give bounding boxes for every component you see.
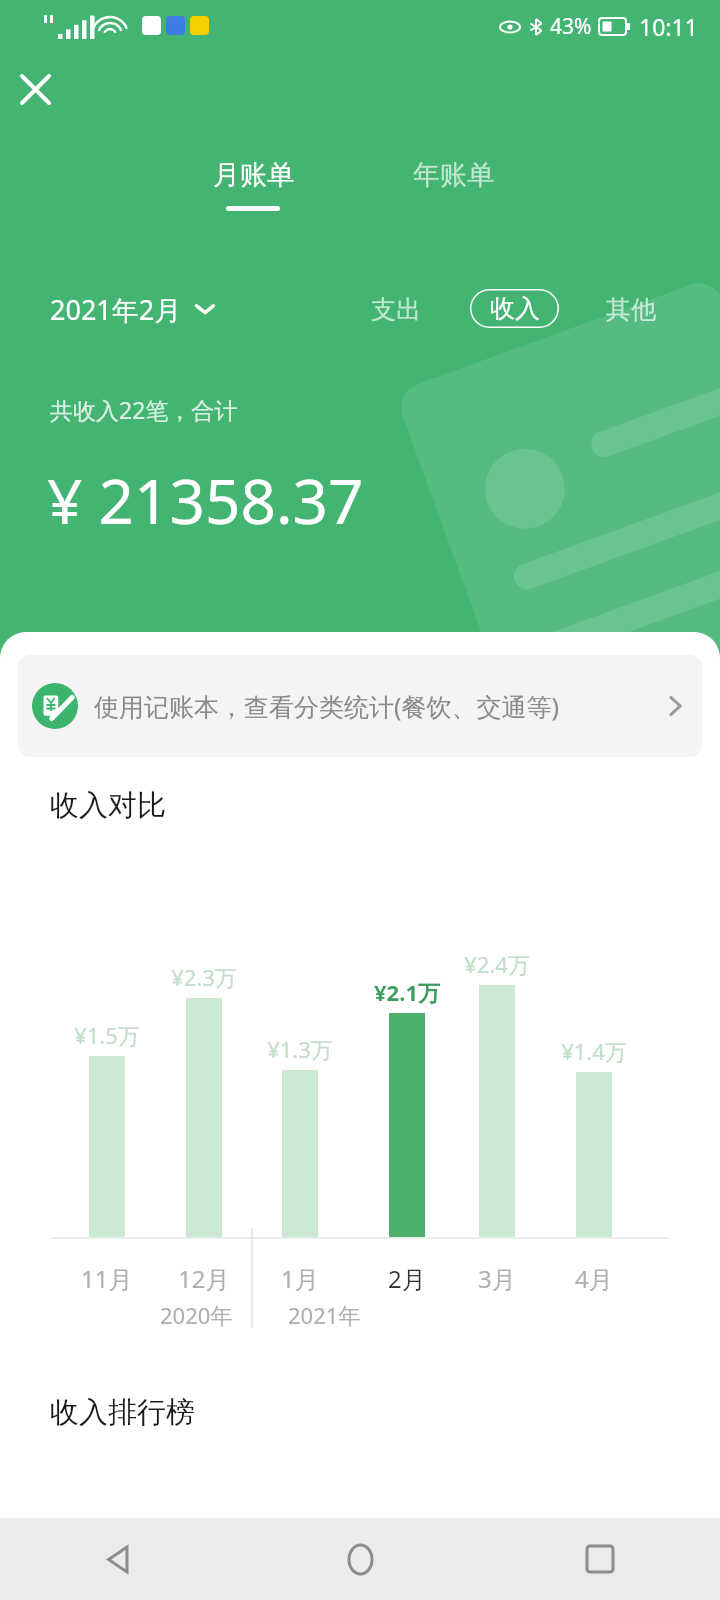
staticText: 11月 (81, 1262, 133, 1295)
staticText: ¥2.3万 (152, 962, 256, 992)
button[interactable]: Close (6, 60, 64, 118)
staticText: 4月 (575, 1262, 613, 1295)
staticText: ¥1.5万 (55, 1020, 159, 1050)
staticText: 收入 (490, 293, 540, 324)
staticText: 12月 (178, 1262, 230, 1295)
staticText: 收入排行榜 (50, 1394, 195, 1431)
button[interactable]: 2月 (363, 1256, 451, 1300)
staticText: 2021年2月 (50, 291, 182, 328)
staticText: 收入对比 (50, 787, 166, 824)
button[interactable]: 使用记账本，查看分类统计(餐饮、交通等) (18, 655, 702, 757)
staticText: 使用记账本，查看分类统计(餐饮、交通等) (94, 689, 650, 723)
staticText: 年账单 (413, 158, 494, 192)
staticText: 10:11 (639, 11, 698, 42)
button[interactable]: 1月 (256, 1256, 344, 1300)
button[interactable]: 11月 (63, 1256, 151, 1300)
button[interactable]: 支出 (362, 287, 430, 331)
button[interactable]: Recents (480, 1518, 720, 1600)
staticText: 支出 (371, 294, 421, 325)
button[interactable]: 月账单 (193, 158, 313, 211)
staticText: ¥1.4万 (542, 1036, 646, 1066)
button[interactable]: 3月 (453, 1256, 541, 1300)
staticText: 2月 (388, 1262, 426, 1295)
button[interactable]: 收入 (470, 289, 559, 328)
staticText: ¥ 21358.37 (47, 458, 364, 542)
staticText: 43% (550, 12, 592, 41)
staticText: 2021年 (288, 1300, 376, 1330)
button[interactable]: 年账单 (393, 158, 513, 204)
staticText: 月账单 (213, 158, 294, 192)
button[interactable]: Home (240, 1518, 480, 1600)
staticText: 共收入22笔，合计 (50, 394, 238, 425)
staticText: ¥2.1万 (355, 977, 459, 1007)
staticText: 其他 (606, 294, 656, 325)
button[interactable]: Back (0, 1518, 240, 1600)
button[interactable]: 其他 (597, 287, 665, 331)
staticText: ¥2.4万 (445, 949, 549, 979)
staticText: 1月 (281, 1262, 319, 1295)
staticText: 3月 (478, 1262, 516, 1295)
staticText: ¥1.3万 (248, 1034, 352, 1064)
button[interactable]: 4月 (550, 1256, 638, 1300)
staticText: 2020年 (160, 1300, 248, 1330)
button[interactable]: 2021年2月 (50, 285, 216, 333)
button[interactable]: 12月 (160, 1256, 248, 1300)
